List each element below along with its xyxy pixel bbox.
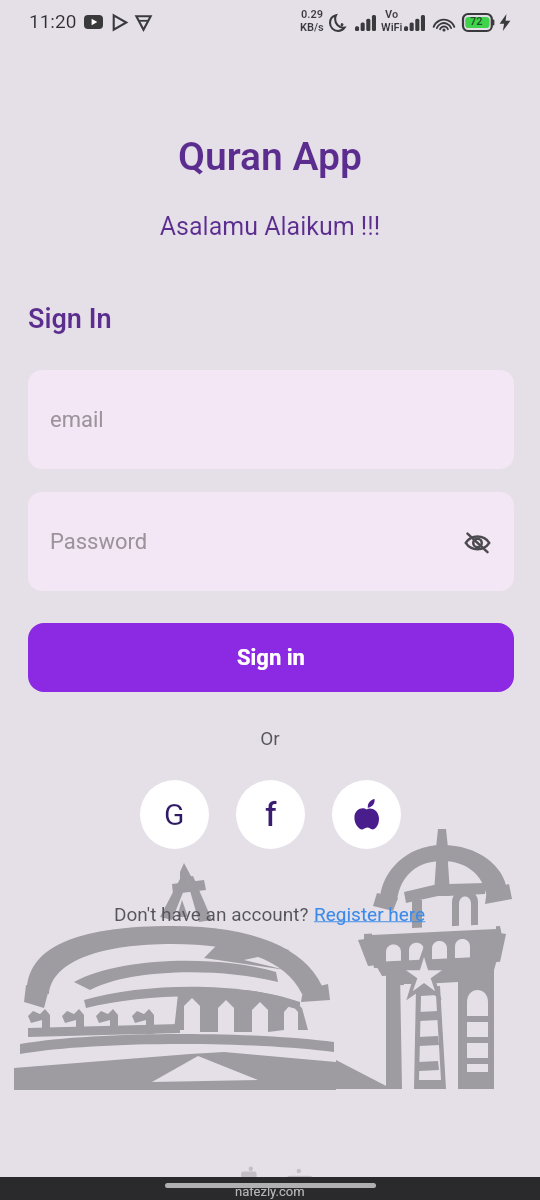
staticText: Sign In	[28, 303, 112, 335]
staticText: Asalamu Alaikum !!!	[0, 212, 540, 241]
staticText: nafezly.com	[235, 1184, 305, 1199]
button[interactable]: Register here	[314, 903, 426, 925]
button[interactable]: Show password	[460, 525, 494, 559]
staticText: f	[265, 795, 277, 834]
button[interactable]: Sign in with Google	[140, 780, 209, 849]
button[interactable]: email	[28, 370, 514, 469]
staticText: 11:20	[29, 10, 77, 32]
staticText: 72	[470, 15, 483, 28]
staticText: WiFi	[381, 21, 403, 34]
staticText: Don't have an account?	[114, 903, 314, 925]
button[interactable]: Sign in with Apple	[332, 780, 401, 849]
staticText: 0.29	[301, 8, 324, 21]
staticText: G	[164, 797, 185, 832]
staticText: Vo	[385, 8, 399, 21]
staticText: KB/s	[300, 21, 324, 34]
staticText: Password	[50, 529, 148, 555]
staticText: Sign in	[237, 645, 305, 671]
staticText: Or	[0, 727, 540, 749]
button[interactable]: Password	[28, 492, 514, 591]
staticText: Quran App	[0, 134, 540, 180]
staticText: email	[50, 407, 104, 433]
button[interactable]: Sign in with Facebook	[236, 780, 305, 849]
button[interactable]: Sign in	[28, 623, 514, 692]
